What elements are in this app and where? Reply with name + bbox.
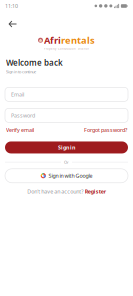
staticText: Sign in with Google — [48, 172, 92, 179]
staticText: Don't have an account? — [27, 188, 83, 195]
staticText: 11:10 — [5, 2, 18, 10]
staticText: Welcome back — [6, 57, 63, 68]
staticText: Register — [85, 188, 106, 195]
staticText: rentals — [61, 34, 95, 46]
staticText: Property Construction Interior — [44, 47, 89, 50]
button[interactable]: Sign in — [5, 141, 128, 153]
button[interactable]: Verify email — [6, 126, 34, 133]
staticText: Sign in — [58, 144, 75, 151]
button[interactable]: Back — [1, 18, 25, 30]
staticText: Verify email — [6, 126, 34, 133]
button[interactable]: Sign in with Google — [5, 169, 128, 183]
button[interactable]: Don't have an account? — [0, 188, 133, 195]
staticText: Sign in to continue — [6, 69, 36, 74]
staticText: Or — [64, 159, 69, 165]
staticText: Password — [11, 112, 35, 119]
staticText: Email — [11, 91, 24, 98]
staticText: Afri — [44, 34, 61, 46]
staticText: Forgot password? — [84, 126, 127, 133]
button[interactable]: Forgot password? — [84, 126, 127, 133]
